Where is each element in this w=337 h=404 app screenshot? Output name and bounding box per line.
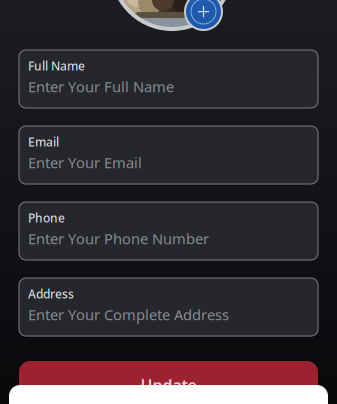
staticText: Email bbox=[28, 134, 59, 150]
button[interactable]: Update bbox=[19, 361, 318, 404]
button[interactable]: Change profile photo bbox=[185, 0, 222, 30]
staticText: Enter Your Full Name bbox=[28, 77, 174, 96]
staticText: Phone bbox=[28, 210, 65, 226]
button[interactable]: Phone bbox=[19, 202, 318, 260]
staticText: Update bbox=[140, 374, 196, 396]
staticText: Address bbox=[28, 286, 74, 302]
staticText: Full Name bbox=[28, 58, 85, 74]
staticText: Enter Your Email bbox=[28, 153, 142, 172]
button[interactable]: Full Name bbox=[19, 50, 318, 108]
button[interactable]: Email bbox=[19, 126, 318, 184]
staticText: Enter Your Phone Number bbox=[28, 229, 209, 248]
button[interactable]: Address bbox=[19, 278, 318, 336]
staticText: Enter Your Complete Address bbox=[28, 305, 229, 324]
